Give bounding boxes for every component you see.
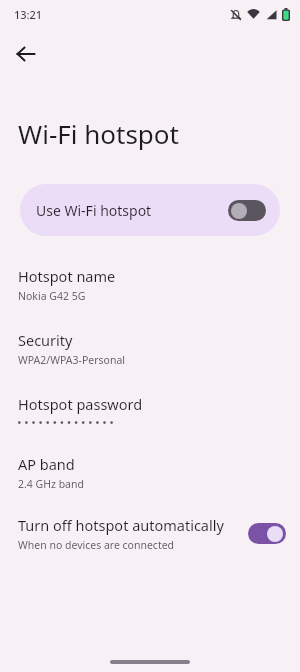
button[interactable]: AP band	[0, 454, 300, 491]
button[interactable]: Turn off hotspot automatically	[0, 515, 300, 552]
staticText: Nokia G42 5G	[18, 289, 86, 303]
button[interactable]: Hotspot password	[0, 394, 300, 427]
staticText: Security	[18, 330, 73, 350]
staticText: Wi-Fi hotspot	[18, 116, 179, 151]
button[interactable]: On	[248, 523, 286, 544]
staticText: 13:21	[14, 7, 43, 22]
staticText: Hotspot name	[18, 266, 116, 286]
staticText: AP band	[18, 454, 75, 474]
button[interactable]: Security	[0, 330, 300, 367]
staticText: WPA2/WPA3-Personal	[18, 353, 125, 367]
button[interactable]: Off	[228, 200, 266, 221]
staticText: Hotspot password	[18, 394, 143, 414]
staticText: 2.4 GHz band	[18, 477, 84, 491]
staticText: When no devices are connected	[18, 538, 175, 552]
button[interactable]: Hotspot name	[0, 266, 300, 303]
staticText: Use Wi-Fi hotspot	[36, 201, 228, 220]
button[interactable]: Back	[6, 34, 46, 74]
button[interactable]: Use Wi-Fi hotspot	[20, 184, 280, 236]
staticText: Turn off hotspot automatically	[18, 515, 224, 535]
